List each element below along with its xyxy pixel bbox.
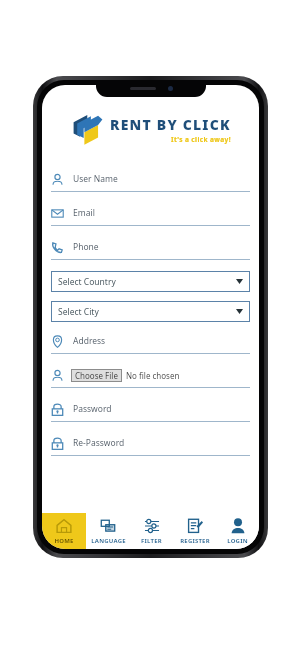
staticText: It's a click away!: [171, 135, 231, 144]
staticText: User Name: [73, 173, 118, 185]
staticText: Address: [73, 335, 106, 347]
button[interactable]: HOME: [42, 513, 86, 549]
staticText: Re-Password: [73, 437, 125, 449]
staticText: Email: [73, 207, 95, 219]
staticText: Choose File: [75, 370, 118, 381]
button[interactable]: Address: [51, 332, 250, 354]
staticText: FILTER: [141, 537, 162, 545]
button[interactable]: LOGIN: [216, 513, 259, 549]
button[interactable]: FILTER: [130, 513, 173, 549]
button[interactable]: Phone: [51, 238, 250, 260]
staticText: HOME: [54, 537, 74, 545]
button[interactable]: Re-Password: [51, 434, 250, 456]
staticText: RENT BY CLICK: [110, 115, 231, 134]
staticText: REGISTER: [180, 537, 210, 545]
staticText: No file chosen: [126, 370, 180, 381]
button[interactable]: Select Country: [51, 271, 250, 292]
button[interactable]: User Name: [51, 170, 250, 192]
staticText: Password: [73, 403, 112, 415]
staticText: LOGIN: [227, 537, 248, 545]
staticText: Select City: [58, 306, 236, 318]
button[interactable]: LANGUAGE: [86, 513, 130, 549]
button[interactable]: Password: [51, 400, 250, 422]
button[interactable]: Email: [51, 204, 250, 226]
staticText: Select Country: [58, 276, 236, 288]
button[interactable]: Choose File: [51, 366, 250, 388]
button[interactable]: REGISTER: [173, 513, 216, 549]
staticText: Phone: [73, 241, 99, 253]
staticText: LANGUAGE: [91, 537, 126, 545]
button[interactable]: Select City: [51, 301, 250, 322]
